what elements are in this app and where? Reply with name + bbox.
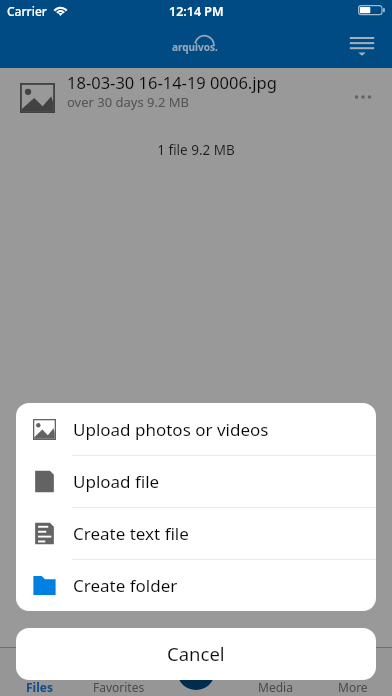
button[interactable]: Upload file: [16, 455, 376, 507]
staticText: 1 file 9.2 MB: [0, 141, 392, 159]
staticText: Files: [26, 679, 53, 695]
staticText: Carrier: [7, 3, 47, 19]
button[interactable]: Create text file: [16, 507, 376, 559]
staticText: More: [338, 679, 368, 695]
staticText: Media: [258, 679, 293, 695]
button[interactable]: Create folder: [16, 559, 376, 611]
staticText: arquivos.: [172, 40, 218, 54]
staticText: 18-03-30 16-14-19 0006.jpg: [67, 71, 277, 93]
staticText: 12:14 PM: [169, 3, 224, 20]
staticText: Create text file: [73, 522, 189, 545]
staticText: Favorites: [93, 679, 145, 695]
staticText: Cancel: [167, 641, 225, 666]
button[interactable]: More options: [341, 75, 385, 119]
button[interactable]: Add: [177, 652, 215, 690]
button[interactable]: Cancel: [16, 628, 376, 680]
staticText: Create folder: [73, 574, 178, 597]
button[interactable]: Files: [0, 647, 79, 696]
button[interactable]: Favorites: [79, 647, 158, 696]
button[interactable]: Upload photos or videos: [16, 403, 376, 455]
button[interactable]: More: [314, 647, 392, 696]
button[interactable]: 18-03-30 16-14-19 0006.jpg: [0, 68, 392, 122]
button[interactable]: Media: [236, 647, 314, 696]
button[interactable]: Sort: [344, 26, 380, 66]
staticText: over 30 days 9.2 MB: [67, 93, 190, 111]
staticText: Upload photos or videos: [73, 418, 269, 441]
staticText: Upload file: [73, 470, 160, 493]
